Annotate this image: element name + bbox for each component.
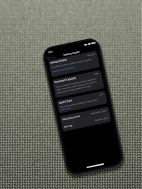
button[interactable] — [0, 0, 142, 189]
